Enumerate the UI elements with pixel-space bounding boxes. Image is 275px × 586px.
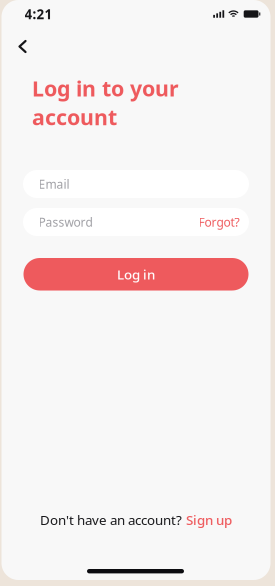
staticText: Log in	[117, 265, 155, 283]
staticText: Password	[38, 214, 92, 230]
staticText: Email	[38, 176, 69, 192]
button[interactable]: Back	[12, 34, 32, 59]
button[interactable]: Log in	[23, 258, 248, 290]
staticText: Don't have an account?	[40, 511, 182, 529]
staticText: 4:21	[24, 5, 52, 23]
button[interactable]: Forgot?	[198, 214, 239, 230]
staticText: Sign up	[186, 511, 232, 529]
staticText: Log in to your	[32, 74, 179, 102]
button[interactable]: Sign up	[186, 511, 232, 529]
staticText: Forgot?	[198, 214, 239, 230]
staticText: account	[32, 103, 117, 131]
